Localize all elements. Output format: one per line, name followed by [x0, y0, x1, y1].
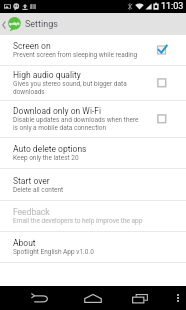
staticText: Auto delete options — [13, 144, 87, 154]
button[interactable]: Navigate up — [0, 13, 24, 35]
staticText: High audio quality — [13, 70, 81, 80]
staticText: Settings — [25, 19, 58, 30]
button[interactable]: Feedback — [0, 201, 186, 232]
staticText: Download only on Wi-Fi — [13, 106, 102, 116]
button[interactable]: Start over — [0, 169, 186, 201]
staticText: Feedback — [13, 207, 50, 217]
button[interactable]: Recent apps — [122, 286, 158, 310]
staticText: Disable updates and downloads when there — [13, 116, 139, 124]
staticText: downloads — [13, 88, 45, 96]
staticText: Keep only the latest 20 — [13, 154, 79, 162]
staticText: Start over — [13, 176, 50, 186]
staticText: Gives you stereo sound, but bigger data — [13, 80, 127, 88]
button[interactable]: Home — [75, 286, 111, 310]
staticText: spotlight — [9, 22, 20, 25]
button[interactable]: High audio quality — [0, 66, 186, 101]
staticText: 11:03 — [161, 1, 184, 12]
button[interactable]: Auto delete options — [0, 138, 186, 169]
button[interactable]: Back — [22, 286, 58, 310]
button[interactable]: Download only on Wi-Fi — [0, 101, 186, 138]
staticText: Screen on — [13, 41, 51, 51]
staticText: Email the developers to help improve the… — [13, 217, 143, 225]
staticText: Spotlight English App v1.0.0 — [13, 248, 94, 256]
staticText: Prevent screen from sleeping while readi… — [13, 51, 138, 59]
button[interactable]: Screen on — [0, 35, 186, 66]
staticText: is only a mobile data connection — [13, 124, 107, 132]
staticText: Delete all content — [13, 186, 64, 194]
staticText: About — [13, 238, 36, 248]
button[interactable]: About — [0, 232, 186, 263]
button[interactable]: More options — [170, 286, 186, 310]
